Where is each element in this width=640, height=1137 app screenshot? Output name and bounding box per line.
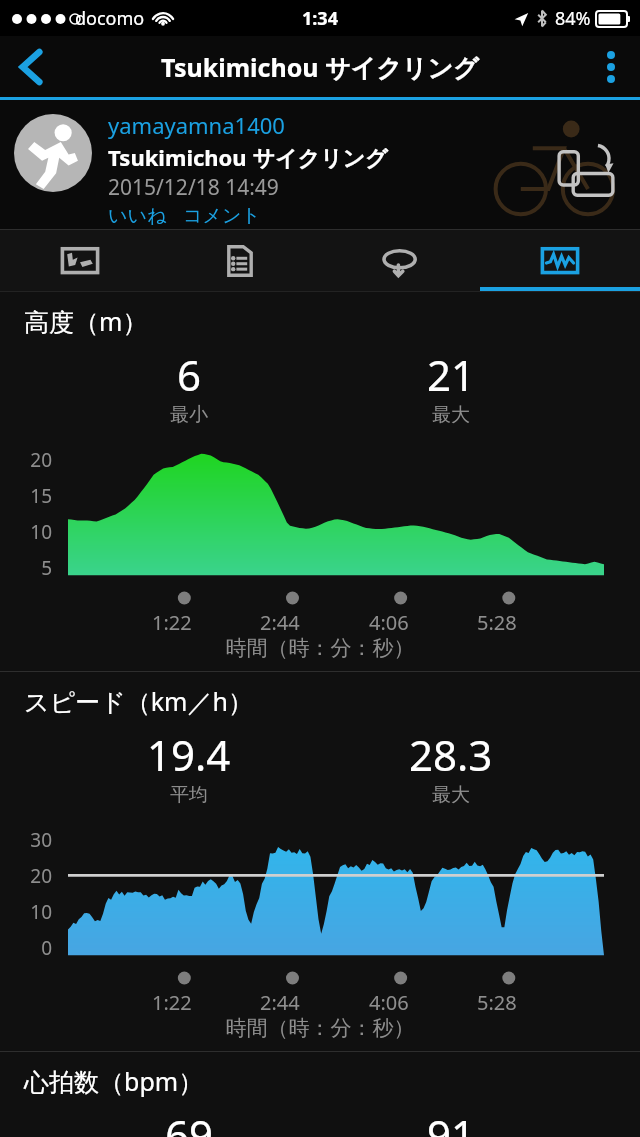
staticText: 5	[18, 555, 52, 581]
staticText: 4:06	[369, 609, 409, 635]
staticText: 0	[18, 935, 52, 961]
staticText: 91	[427, 1106, 476, 1137]
staticText: 30	[18, 827, 52, 853]
staticText: 最大	[432, 403, 470, 427]
staticText: 4:06	[369, 989, 409, 1015]
staticText: Tsukimichou サイクリング	[161, 50, 479, 84]
staticText: 最小	[170, 403, 208, 427]
staticText: 19.4	[147, 726, 231, 783]
staticText: 最大	[432, 783, 470, 807]
staticText: docomo	[75, 6, 145, 31]
button[interactable]: yamayamna1400	[0, 100, 640, 229]
staticText: 1:22	[152, 609, 192, 635]
staticText: 時間（時：分：秒）	[0, 1015, 640, 1041]
staticText: 69	[165, 1106, 214, 1137]
staticText: 心拍数（bpm）	[24, 1064, 204, 1098]
staticText: コメント	[183, 204, 261, 228]
staticText: 2015/12/18 14:49	[108, 173, 279, 202]
button[interactable]: コメント	[183, 204, 261, 228]
staticText: 15	[18, 483, 52, 509]
button[interactable]: Graphs	[480, 230, 640, 291]
staticText: 時間（時：分：秒）	[0, 635, 640, 661]
staticText: 平均	[170, 783, 208, 807]
button[interactable]: More options	[582, 38, 640, 96]
staticText: Tsukimichou サイクリング	[108, 142, 388, 172]
staticText: 5:28	[477, 609, 517, 635]
staticText: 28.3	[409, 726, 493, 783]
staticText: いいね	[108, 204, 167, 228]
button[interactable]: Map	[0, 230, 160, 291]
button[interactable]: Rotate device	[554, 144, 618, 208]
staticText: 2:44	[260, 989, 300, 1015]
button[interactable]: いいね	[108, 204, 167, 228]
staticText: 84%	[555, 6, 591, 31]
staticText: 20	[18, 863, 52, 889]
staticText: スピード（km／h）	[24, 684, 253, 718]
staticText: 20	[18, 447, 52, 473]
staticText: 2:44	[260, 609, 300, 635]
staticText: 10	[18, 519, 52, 545]
staticText: yamayamna1400	[108, 110, 285, 140]
staticText: 1:34	[302, 6, 338, 31]
staticText: 6	[177, 346, 202, 403]
button[interactable]: Details	[160, 230, 320, 291]
staticText: 21	[427, 346, 476, 403]
staticText: 5:28	[477, 989, 517, 1015]
staticText: 1:22	[152, 989, 192, 1015]
staticText: 高度（m）	[24, 304, 148, 338]
button[interactable]: Laps	[320, 230, 480, 291]
staticText: 10	[18, 899, 52, 925]
button[interactable]: Back	[0, 36, 62, 97]
